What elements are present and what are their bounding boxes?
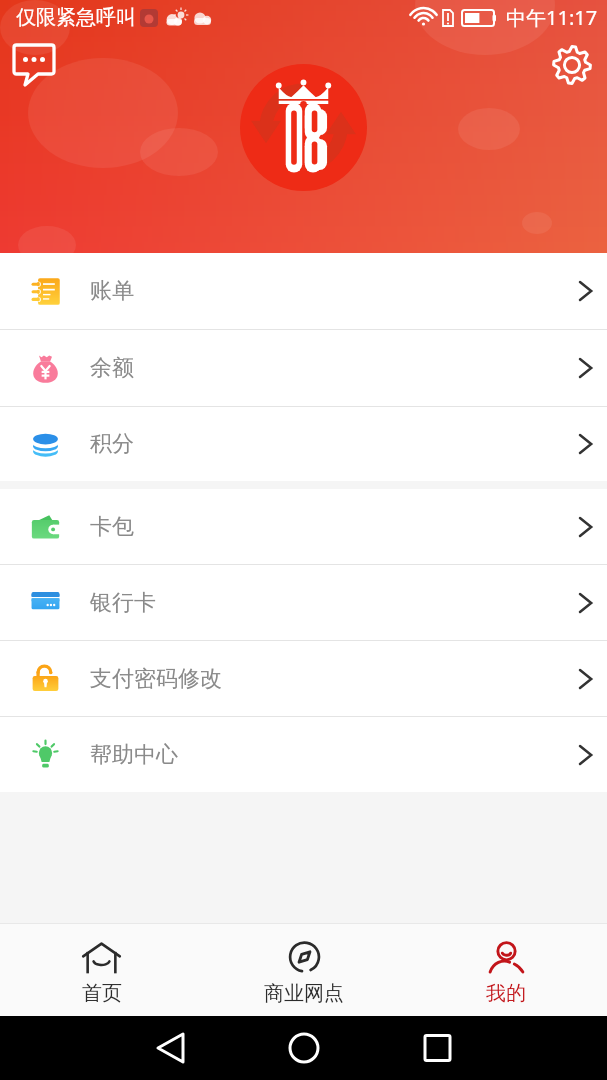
staticText: 账单: [90, 277, 134, 305]
button[interactable]: 首页: [0, 923, 203, 1016]
staticText: 余额: [90, 354, 134, 382]
button[interactable]: 账单: [0, 253, 607, 329]
button[interactable]: 帮助中心: [0, 717, 607, 792]
button[interactable]: 余额: [0, 330, 607, 406]
staticText: 银行卡: [90, 589, 156, 617]
staticText: 卡包: [90, 513, 134, 541]
button[interactable]: 我的: [405, 923, 607, 1016]
staticText: 帮助中心: [90, 741, 178, 769]
staticText: 支付密码修改: [90, 665, 222, 693]
staticText: 首页: [82, 981, 122, 1006]
button[interactable]: 支付密码修改: [0, 641, 607, 716]
staticText: 积分: [90, 430, 134, 458]
button[interactable]: Settings: [549, 42, 595, 88]
staticText: 仅限紧急呼叫: [16, 5, 136, 30]
staticText: 我的: [486, 981, 526, 1006]
button[interactable]: Messages: [12, 42, 60, 90]
staticText: 商业网点: [264, 981, 344, 1006]
staticText: 中午11:17: [506, 4, 598, 31]
button[interactable]: 积分: [0, 407, 607, 481]
button[interactable]: 商业网点: [203, 923, 405, 1016]
button[interactable]: 卡包: [0, 489, 607, 564]
button[interactable]: 银行卡: [0, 565, 607, 640]
